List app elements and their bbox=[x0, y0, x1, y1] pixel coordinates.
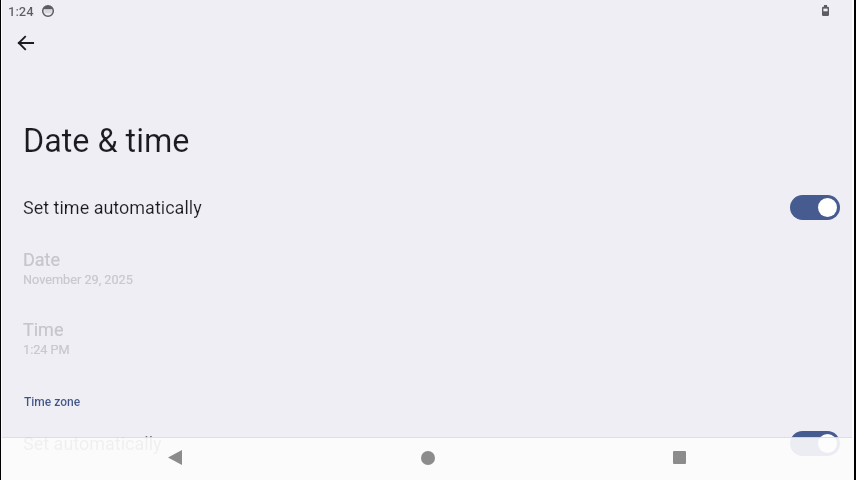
button[interactable]: Date bbox=[0, 249, 856, 287]
staticText: Time bbox=[23, 319, 64, 340]
staticText: November 29, 2025 bbox=[23, 272, 133, 287]
button[interactable]: Home bbox=[404, 436, 452, 479]
staticText: Date bbox=[23, 249, 61, 270]
staticText: Set automatically bbox=[23, 433, 162, 454]
staticText: 1:24 PM bbox=[23, 342, 70, 357]
button[interactable]: Set automatically bbox=[0, 420, 856, 466]
staticText: Date & time bbox=[23, 122, 190, 160]
button[interactable]: Set time automatically bbox=[0, 184, 856, 230]
button[interactable]: Set time zone automatically, on bbox=[790, 431, 840, 456]
button[interactable]: Time bbox=[0, 319, 856, 357]
button[interactable]: Back bbox=[151, 436, 199, 479]
button[interactable]: Recent apps bbox=[655, 436, 703, 479]
button[interactable]: Set time automatically, on bbox=[790, 195, 840, 220]
staticText: Time zone bbox=[24, 395, 81, 409]
staticText: Set time automatically bbox=[23, 197, 202, 218]
button[interactable]: Back bbox=[6, 23, 46, 63]
button[interactable]: Time zone bbox=[0, 390, 856, 414]
staticText: 1:24 bbox=[8, 4, 34, 19]
